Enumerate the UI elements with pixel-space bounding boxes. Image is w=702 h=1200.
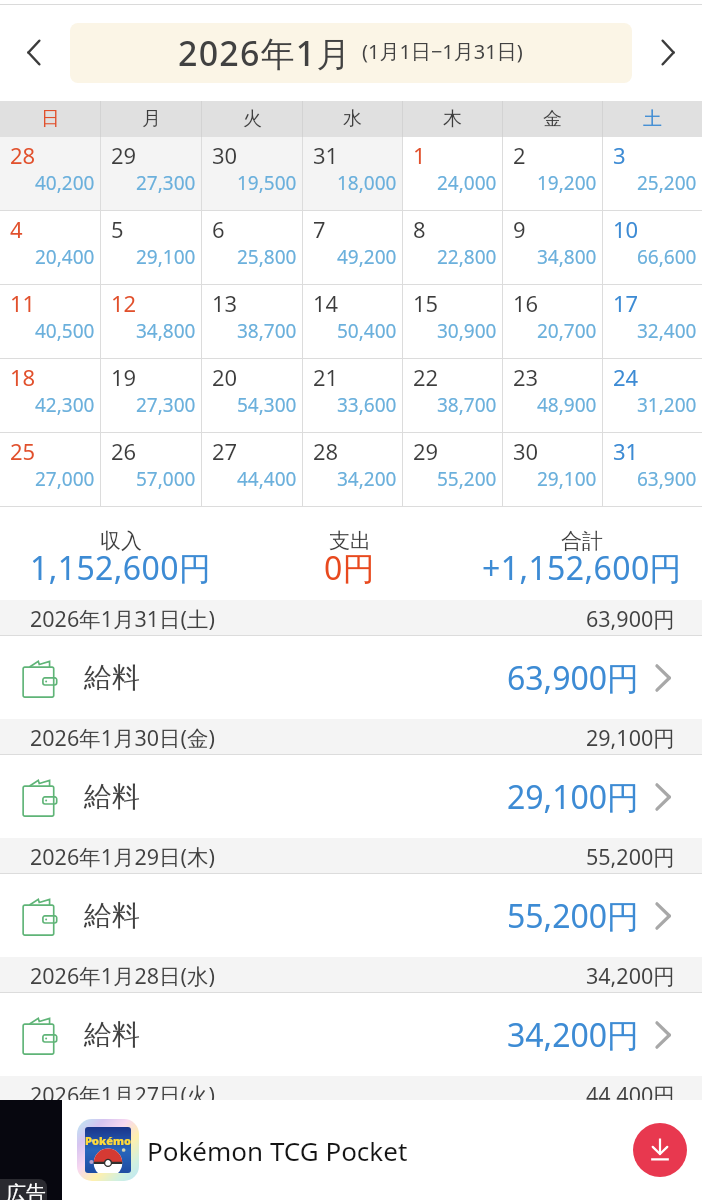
staticText: 2026年1月27日(火) [30, 1080, 215, 1109]
button[interactable]: 28 [0, 137, 100, 210]
button[interactable]: 給料 [0, 874, 702, 957]
staticText: 26 [111, 436, 137, 466]
staticText: 32,400 [637, 318, 697, 344]
staticText: 18 [10, 362, 36, 392]
staticText: 2026年1月30日(金) [30, 723, 215, 752]
staticText: Pokémon [85, 1133, 131, 1148]
staticText: 30 [212, 140, 238, 170]
button[interactable]: Next month [642, 26, 694, 78]
button[interactable]: 18 [0, 359, 100, 432]
staticText: 給料 [84, 779, 140, 814]
button[interactable]: 21 [303, 359, 402, 432]
staticText: 2 [513, 140, 526, 170]
button[interactable]: 給料 [0, 755, 702, 838]
staticText: 29 [111, 140, 137, 170]
button[interactable]: 23 [503, 359, 602, 432]
button[interactable]: 29 [403, 433, 502, 506]
staticText: 水 [343, 107, 362, 131]
button[interactable]: 1 [403, 137, 502, 210]
staticText: 28 [10, 140, 36, 170]
staticText: 34,200円 [586, 961, 675, 990]
button[interactable]: 給料 [0, 636, 702, 719]
button[interactable]: 17 [603, 285, 702, 358]
staticText: 24,000 [437, 170, 497, 196]
staticText: 22 [413, 362, 439, 392]
button[interactable]: 7 [303, 211, 402, 284]
button[interactable]: 4 [0, 211, 100, 284]
staticText: 29 [413, 436, 439, 466]
button[interactable]: 28 [303, 433, 402, 506]
staticText: 19,200 [537, 170, 597, 196]
staticText: 29,100円 [507, 775, 640, 819]
button[interactable]: 22 [403, 359, 502, 432]
button[interactable]: 29 [101, 137, 201, 210]
staticText: 4 [10, 214, 23, 244]
staticText: 2026年1月29日(木) [30, 842, 215, 871]
button[interactable]: 8 [403, 211, 502, 284]
staticText: 3 [613, 140, 626, 170]
button[interactable]: 26 [101, 433, 201, 506]
button[interactable]: 15 [403, 285, 502, 358]
button[interactable]: 2 [503, 137, 602, 210]
staticText: 5 [111, 214, 124, 244]
button[interactable]: 24 [603, 359, 702, 432]
button[interactable]: 5 [101, 211, 201, 284]
staticText: 20,400 [35, 244, 95, 270]
staticText: 25 [10, 436, 36, 466]
button[interactable]: 12 [101, 285, 201, 358]
staticText: 63,900円 [507, 656, 640, 700]
staticText: 57,000 [136, 466, 196, 492]
button[interactable]: 10 [603, 211, 702, 284]
staticText: Pokémon TCG Pocket [147, 1133, 408, 1168]
staticText: (1月1日−1月31日) [362, 38, 523, 65]
button[interactable]: 2026年1月 [70, 23, 632, 83]
button[interactable]: 25 [0, 433, 100, 506]
button[interactable]: 30 [503, 433, 602, 506]
staticText: 66,600 [637, 244, 697, 270]
staticText: 22,800 [437, 244, 497, 270]
staticText: 1 [413, 140, 426, 170]
button[interactable]: 9 [503, 211, 602, 284]
button[interactable]: 30 [202, 137, 302, 210]
button[interactable]: Download app [633, 1123, 687, 1177]
button[interactable]: Previous month [8, 26, 60, 78]
staticText: 8 [413, 214, 426, 244]
staticText: 24 [613, 362, 639, 392]
staticText: +1,152,600円 [482, 546, 682, 590]
staticText: 15 [413, 288, 439, 318]
staticText: 21 [313, 362, 339, 392]
staticText: 38,700 [437, 392, 497, 418]
staticText: 27,000 [35, 466, 95, 492]
button[interactable]: 3 [603, 137, 702, 210]
button[interactable]: 16 [503, 285, 602, 358]
button[interactable]: 27 [202, 433, 302, 506]
button[interactable]: 給料 [0, 993, 702, 1076]
staticText: 火 [243, 107, 262, 131]
staticText: 25,200 [637, 170, 697, 196]
staticText: 12 [111, 288, 137, 318]
staticText: 0円 [324, 546, 376, 590]
button[interactable]: 13 [202, 285, 302, 358]
staticText: 54,300 [237, 392, 297, 418]
button[interactable]: 11 [0, 285, 100, 358]
staticText: 14 [313, 288, 339, 318]
staticText: 25,800 [237, 244, 297, 270]
staticText: 63,900 [637, 466, 697, 492]
staticText: 50,400 [337, 318, 397, 344]
button[interactable]: 14 [303, 285, 402, 358]
staticText: 40,500 [35, 318, 95, 344]
staticText: 日 [41, 107, 60, 131]
button[interactable]: 31 [603, 433, 702, 506]
staticText: 金 [543, 107, 562, 131]
staticText: 31 [613, 436, 639, 466]
button[interactable]: 20 [202, 359, 302, 432]
staticText: 18,000 [337, 170, 397, 196]
staticText: 6 [212, 214, 225, 244]
button[interactable]: 19 [101, 359, 201, 432]
button[interactable]: 31 [303, 137, 402, 210]
staticText: 49,200 [337, 244, 397, 270]
button[interactable]: 6 [202, 211, 302, 284]
staticText: 55,200 [437, 466, 497, 492]
staticText: 2026年1月 [178, 30, 352, 76]
staticText: 34,800 [537, 244, 597, 270]
